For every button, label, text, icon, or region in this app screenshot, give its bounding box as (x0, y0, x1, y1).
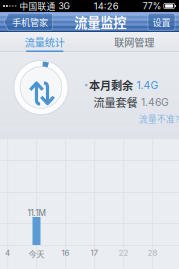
staticText: 77% (143, 1, 162, 11)
staticText: 流量监控 (74, 12, 126, 32)
button[interactable]: 设置 (148, 13, 175, 31)
staticText: 手机管家 (12, 15, 48, 28)
staticText: 联网管理 (114, 35, 154, 49)
button[interactable]: 流量统计 (0, 32, 89, 52)
staticText: 中国联通 (20, 0, 56, 12)
staticText: 4 (5, 248, 10, 258)
staticText: 本月剩余 (89, 77, 133, 93)
button[interactable]: 手机管家 (4, 13, 52, 31)
staticText: 17 (90, 248, 98, 258)
staticText: 1.46G (141, 96, 169, 108)
staticText: 设置 (152, 15, 170, 28)
staticText: 1.4G (136, 79, 158, 91)
staticText: 流量不准? (139, 112, 179, 125)
button[interactable]: 联网管理 (89, 32, 179, 52)
staticText: 28 (147, 248, 157, 258)
staticText: 22 (118, 248, 128, 258)
staticText: 16 (61, 248, 69, 258)
staticText: 今天 (28, 248, 44, 260)
staticText: 11.1M (27, 208, 45, 218)
staticText: 3G (59, 1, 70, 11)
staticText: 14:26 (94, 0, 119, 12)
staticText: 流量套餐 (93, 94, 137, 110)
button[interactable]: 流量不准? (139, 112, 179, 125)
staticText: 流量统计 (25, 35, 65, 49)
